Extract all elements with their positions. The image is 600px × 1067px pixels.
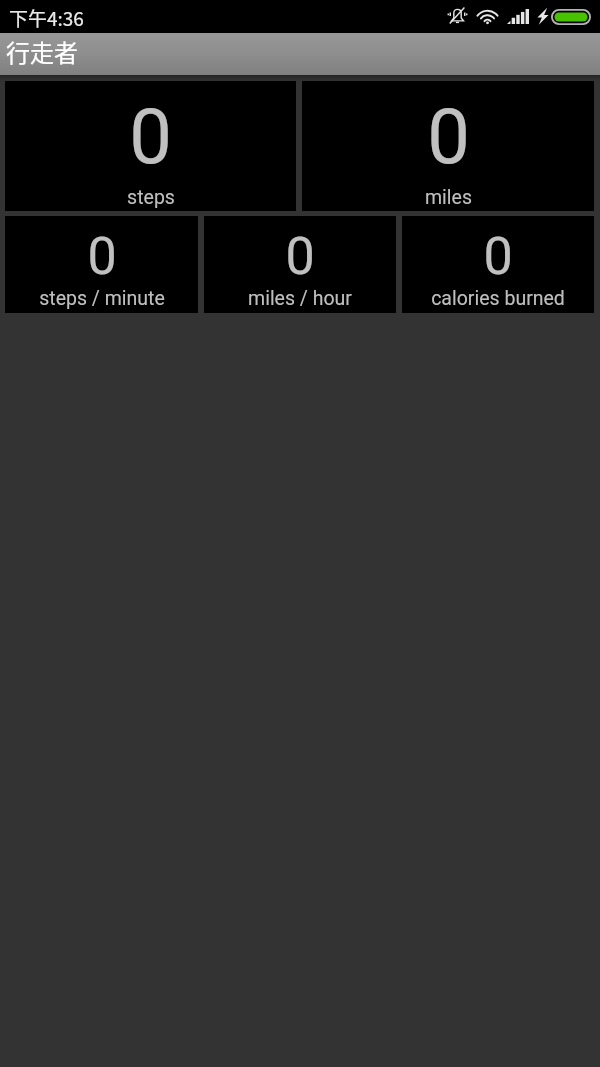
other: Wi-Fi: [476, 7, 499, 25]
staticText: 0: [87, 226, 117, 287]
other: Silent mode: [447, 6, 468, 26]
staticText: steps: [127, 186, 175, 209]
staticText: 行走者: [6, 34, 78, 69]
button[interactable]: 0: [204, 216, 396, 313]
staticText: calories burned: [431, 287, 565, 310]
staticText: steps / minute: [39, 287, 165, 310]
staticText: 0: [129, 92, 172, 181]
button[interactable]: 0: [302, 81, 594, 211]
staticText: 0: [483, 226, 513, 287]
other: Signal strength: [507, 9, 529, 24]
staticText: 下午4:36: [9, 4, 84, 32]
button[interactable]: 0: [402, 216, 594, 313]
staticText: miles: [425, 186, 472, 209]
staticText: 0: [427, 92, 470, 181]
other: Battery: [551, 9, 591, 25]
button[interactable]: 0: [5, 216, 198, 313]
staticText: miles / hour: [248, 287, 352, 310]
button[interactable]: 0: [5, 81, 296, 211]
button[interactable]: 行走者: [0, 33, 600, 75]
other: Charging: [536, 7, 550, 25]
staticText: 0: [285, 226, 315, 287]
